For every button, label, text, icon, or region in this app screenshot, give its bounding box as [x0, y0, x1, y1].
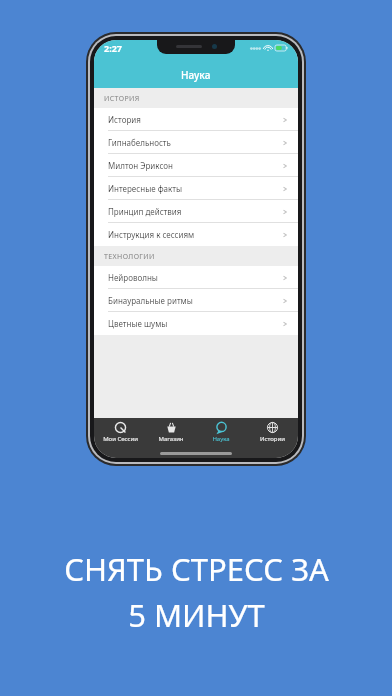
- staticText: Принцип действия: [108, 206, 182, 217]
- staticText: История: [108, 114, 141, 125]
- button[interactable]: Милтон Эриксон: [94, 154, 298, 177]
- button[interactable]: Интересные факты: [94, 177, 298, 200]
- staticText: Гипнабельность: [108, 137, 171, 148]
- staticText: Инструкция к сессиям: [108, 229, 195, 240]
- staticText: Милтон Эриксон: [108, 160, 173, 171]
- staticText: Цветные шумы: [108, 318, 168, 329]
- staticText: ИСТОРИЯ: [104, 94, 140, 104]
- staticText: Бинауральные ритмы: [108, 295, 193, 306]
- button[interactable]: Цветные шумы: [94, 312, 298, 335]
- staticText: Интересные факты: [108, 183, 183, 194]
- staticText: СНЯТЬ СТРЕСС ЗА: [64, 548, 329, 590]
- staticText: ТЕХНОЛОГИИ: [104, 252, 155, 262]
- button[interactable]: Нейроволны: [94, 266, 298, 289]
- other: Истории: [267, 422, 278, 433]
- button[interactable]: Бинауральные ритмы: [94, 289, 298, 312]
- staticText: Наука: [212, 435, 230, 443]
- other: Наука: [216, 422, 227, 433]
- staticText: Мои Сессии: [103, 435, 138, 443]
- button[interactable]: Гипнабельность: [94, 131, 298, 154]
- button[interactable]: Истории: [248, 422, 296, 443]
- staticText: Истории: [260, 435, 285, 443]
- staticText: 5 МИНУТ: [128, 594, 265, 636]
- button[interactable]: Магазин: [147, 422, 195, 443]
- button[interactable]: Мои Сессии: [96, 422, 144, 443]
- other: Магазин: [166, 422, 177, 433]
- other: Мои Сессии: [115, 422, 126, 433]
- staticText: Нейроволны: [108, 272, 158, 283]
- staticText: Магазин: [158, 435, 184, 443]
- button[interactable]: Инструкция к сессиям: [94, 223, 298, 246]
- button[interactable]: Принцип действия: [94, 200, 298, 223]
- button[interactable]: История: [94, 108, 298, 131]
- button[interactable]: Наука: [197, 422, 245, 443]
- staticText: 2:27: [104, 42, 122, 54]
- staticText: Наука: [181, 68, 211, 82]
